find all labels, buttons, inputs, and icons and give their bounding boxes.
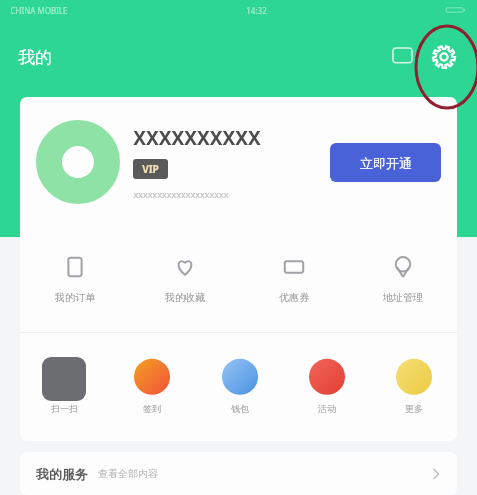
- staticText: VIP: [142, 162, 159, 176]
- button[interactable]: 签到: [108, 333, 196, 437]
- staticText: 签到: [143, 403, 161, 414]
- staticText: 查看全部内容: [98, 467, 158, 480]
- staticText: 优惠券: [279, 291, 309, 304]
- button[interactable]: 我的收藏: [130, 227, 239, 332]
- staticText: 地址管理: [383, 291, 423, 304]
- staticText: 我的服务: [36, 466, 88, 482]
- staticText: XXXXXXXXXX: [133, 125, 261, 151]
- button[interactable]: 地址管理: [348, 227, 457, 332]
- staticText: xxxxxxxxxxxxxxxxxxxx: [133, 188, 229, 200]
- button[interactable]: Messages: [385, 40, 419, 74]
- button[interactable]: XXXXXXXXXX: [20, 97, 457, 227]
- staticText: 更多: [405, 403, 423, 414]
- staticText: 立即开通: [360, 155, 412, 171]
- staticText: CHINA MOBILE: [10, 5, 68, 16]
- button[interactable]: 活动: [283, 333, 370, 437]
- staticText: 活动: [318, 403, 336, 414]
- staticText: 我的收藏: [165, 291, 205, 304]
- button[interactable]: 优惠券: [239, 227, 348, 332]
- button[interactable]: Settings: [425, 38, 463, 76]
- button[interactable]: 我的订单: [20, 227, 130, 332]
- button[interactable]: 钱包: [196, 333, 283, 437]
- staticText: 我的: [18, 47, 52, 68]
- button[interactable]: 更多: [370, 333, 457, 437]
- staticText: 14:32: [246, 5, 267, 16]
- button[interactable]: 扫一扫: [20, 333, 108, 437]
- staticText: 钱包: [231, 403, 249, 414]
- staticText: 扫一扫: [51, 403, 78, 414]
- button[interactable]: 我的服务: [20, 452, 457, 495]
- staticText: 我的订单: [55, 291, 95, 304]
- button[interactable]: 立即开通: [330, 143, 441, 182]
